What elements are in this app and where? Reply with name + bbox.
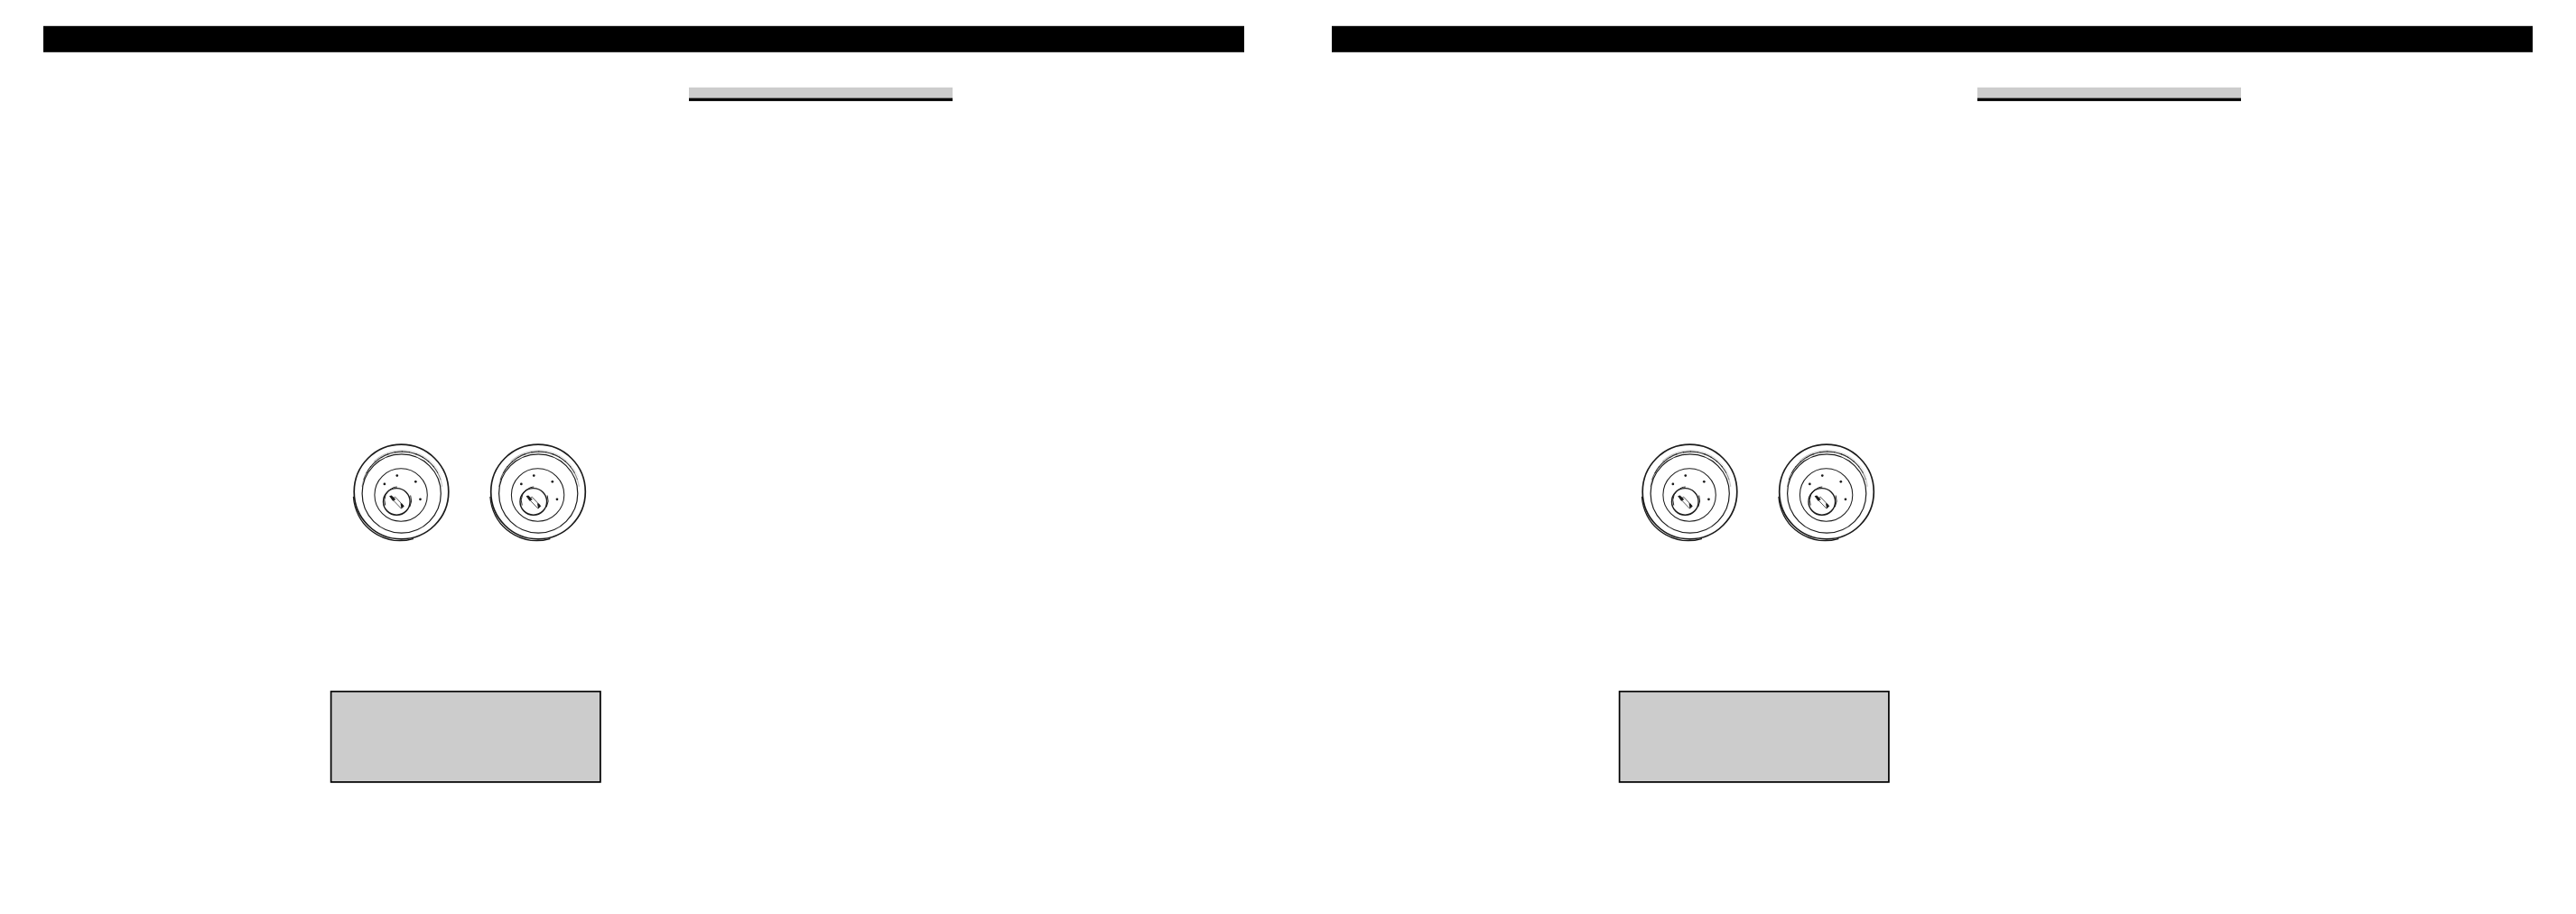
button[interactable]: Dial one: [1642, 444, 1737, 539]
button[interactable]: Dial two: [1779, 444, 1874, 539]
button[interactable]: Note card: [1619, 691, 1890, 783]
button[interactable]: Title field: [1977, 88, 2241, 101]
button[interactable]: Top banner: [1332, 26, 2533, 52]
button[interactable]: Top banner: [43, 26, 1244, 52]
button[interactable]: Title field: [689, 88, 953, 101]
button[interactable]: Note card: [330, 691, 601, 783]
button[interactable]: Dial one: [354, 444, 449, 539]
button[interactable]: Dial two: [490, 444, 585, 539]
